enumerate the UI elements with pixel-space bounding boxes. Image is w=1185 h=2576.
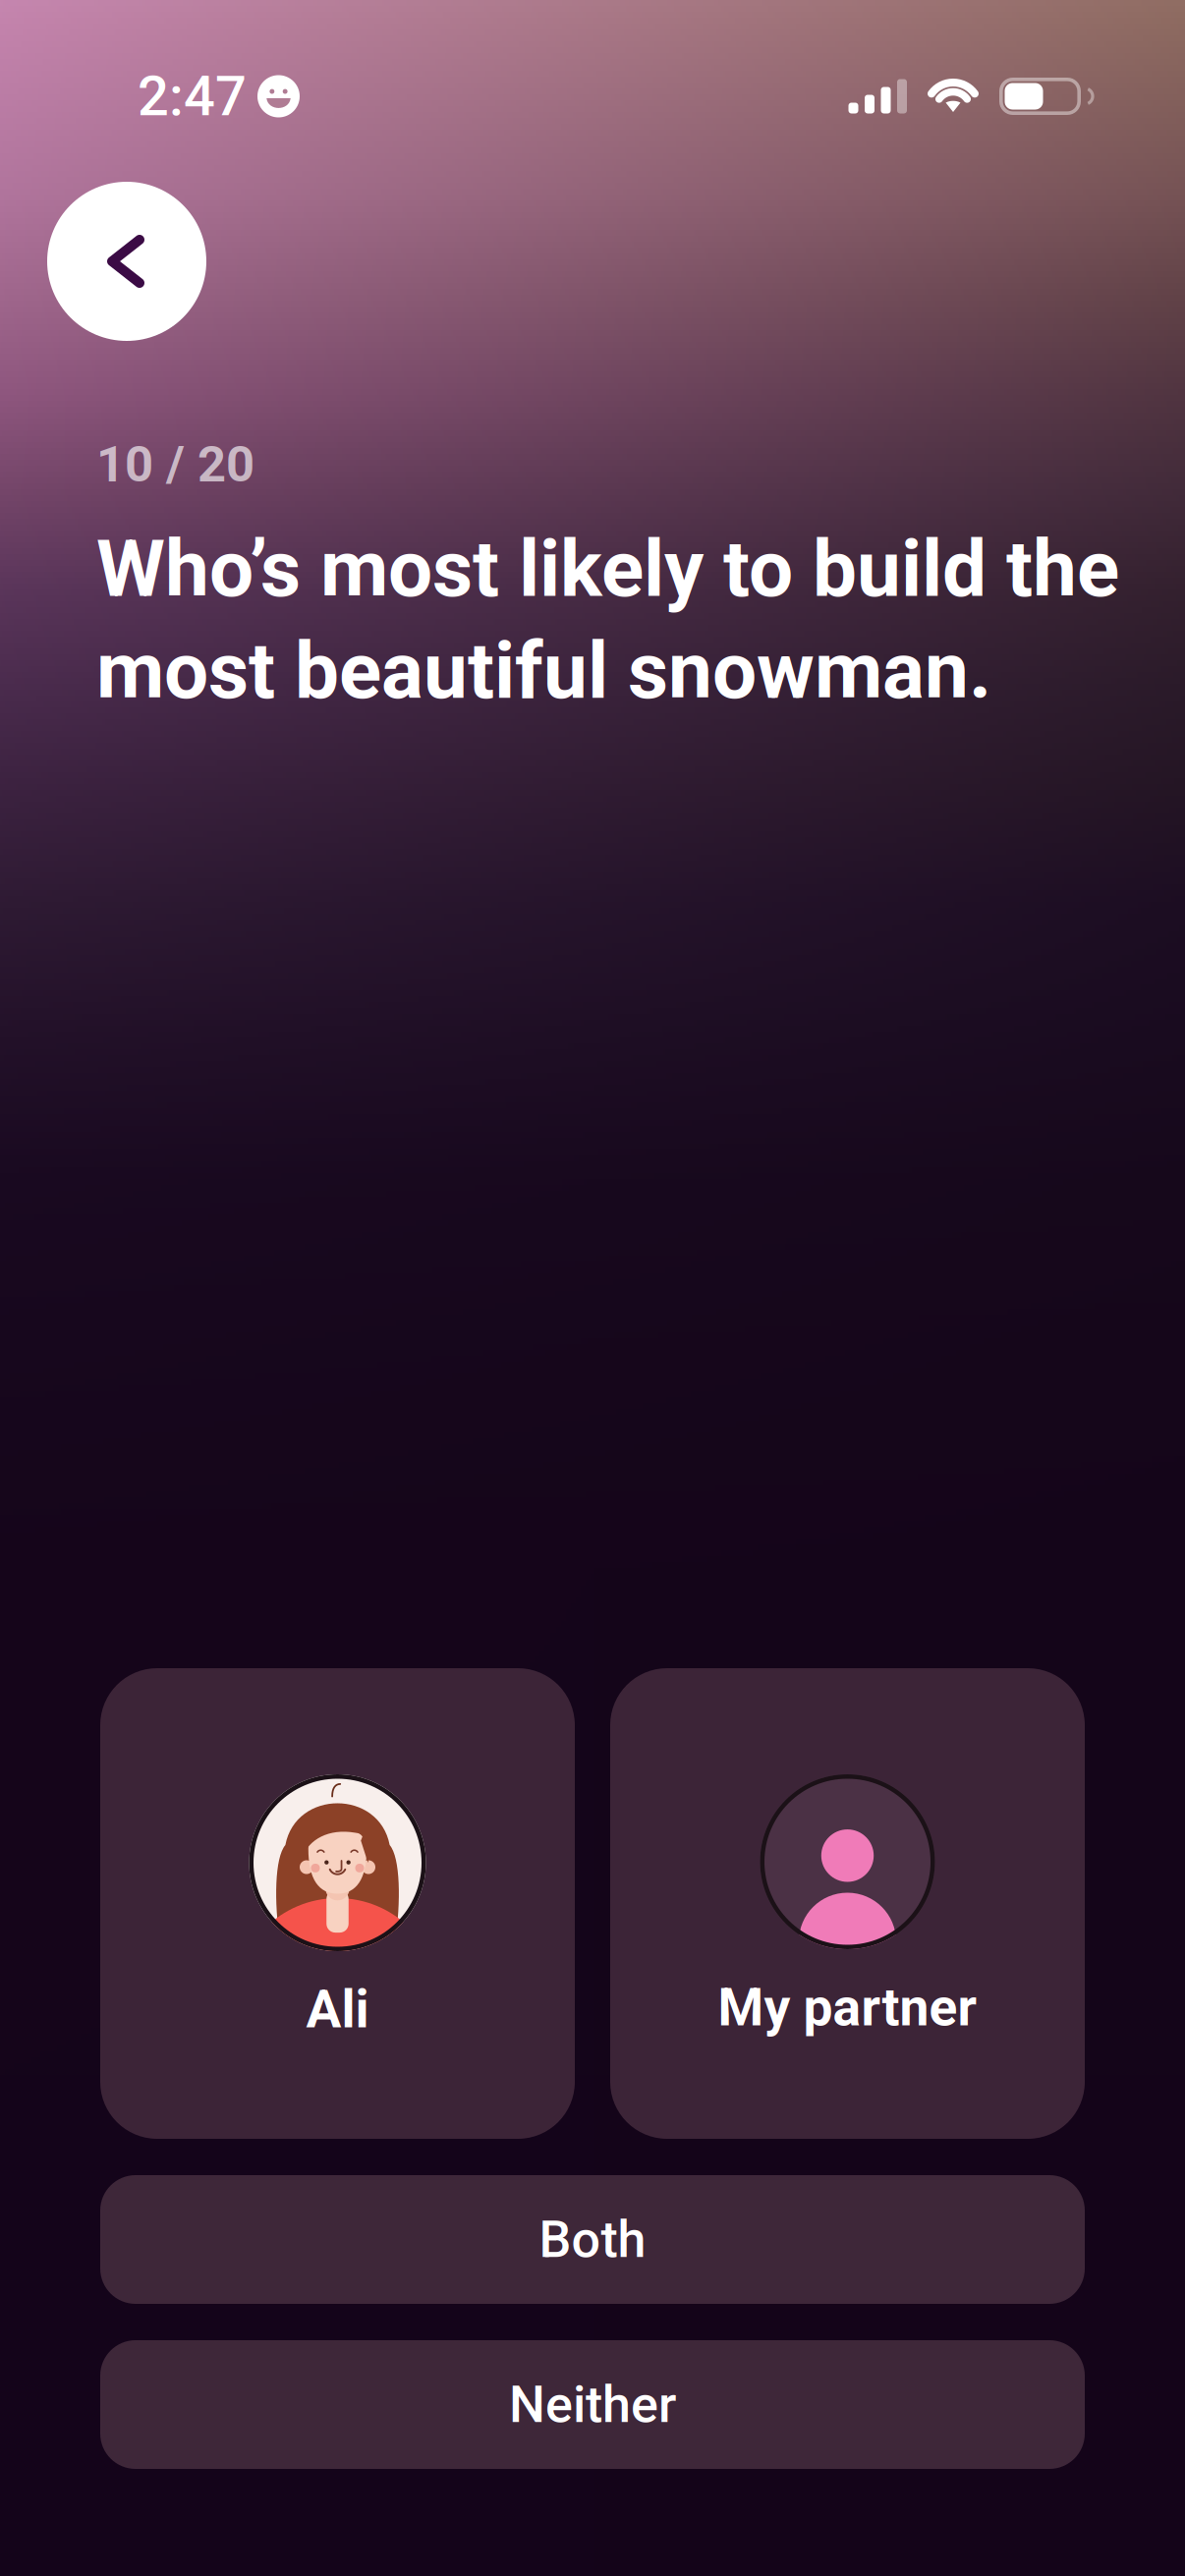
staticText: Neither (509, 2375, 676, 2434)
button[interactable]: Ali (100, 1668, 575, 2139)
staticText: My partner (718, 1977, 977, 2038)
staticText: Ali (306, 1979, 369, 2040)
button[interactable]: Back (47, 182, 206, 341)
button[interactable]: My partner (610, 1668, 1085, 2139)
button[interactable]: Neither (100, 2340, 1085, 2469)
button[interactable]: Both (100, 2175, 1085, 2304)
staticText: 2:47 (138, 64, 247, 129)
staticText: 10 / 20 (96, 435, 254, 494)
staticText: Both (539, 2210, 646, 2269)
staticText: Who’s most likely to build the most beau… (96, 523, 1119, 717)
